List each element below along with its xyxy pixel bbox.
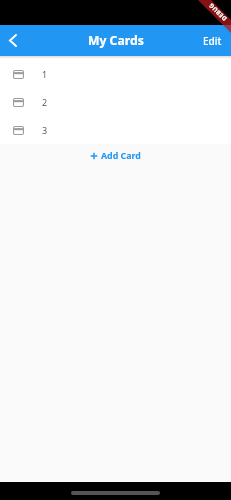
staticText: My Cards [88,32,144,49]
staticText: 1 [42,68,48,80]
button[interactable]: 1 [0,60,231,88]
staticText: 3 [42,124,48,136]
staticText: Add Card [101,150,141,162]
staticText: 2 [42,96,48,108]
button[interactable]: 3 [0,116,231,144]
button[interactable]: Add Card [0,144,231,168]
staticText: DEBUG [207,1,229,23]
button[interactable]: Edit [203,25,222,56]
button[interactable]: 2 [0,88,231,116]
staticText: Edit [203,34,222,48]
button[interactable]: Back [0,25,26,56]
